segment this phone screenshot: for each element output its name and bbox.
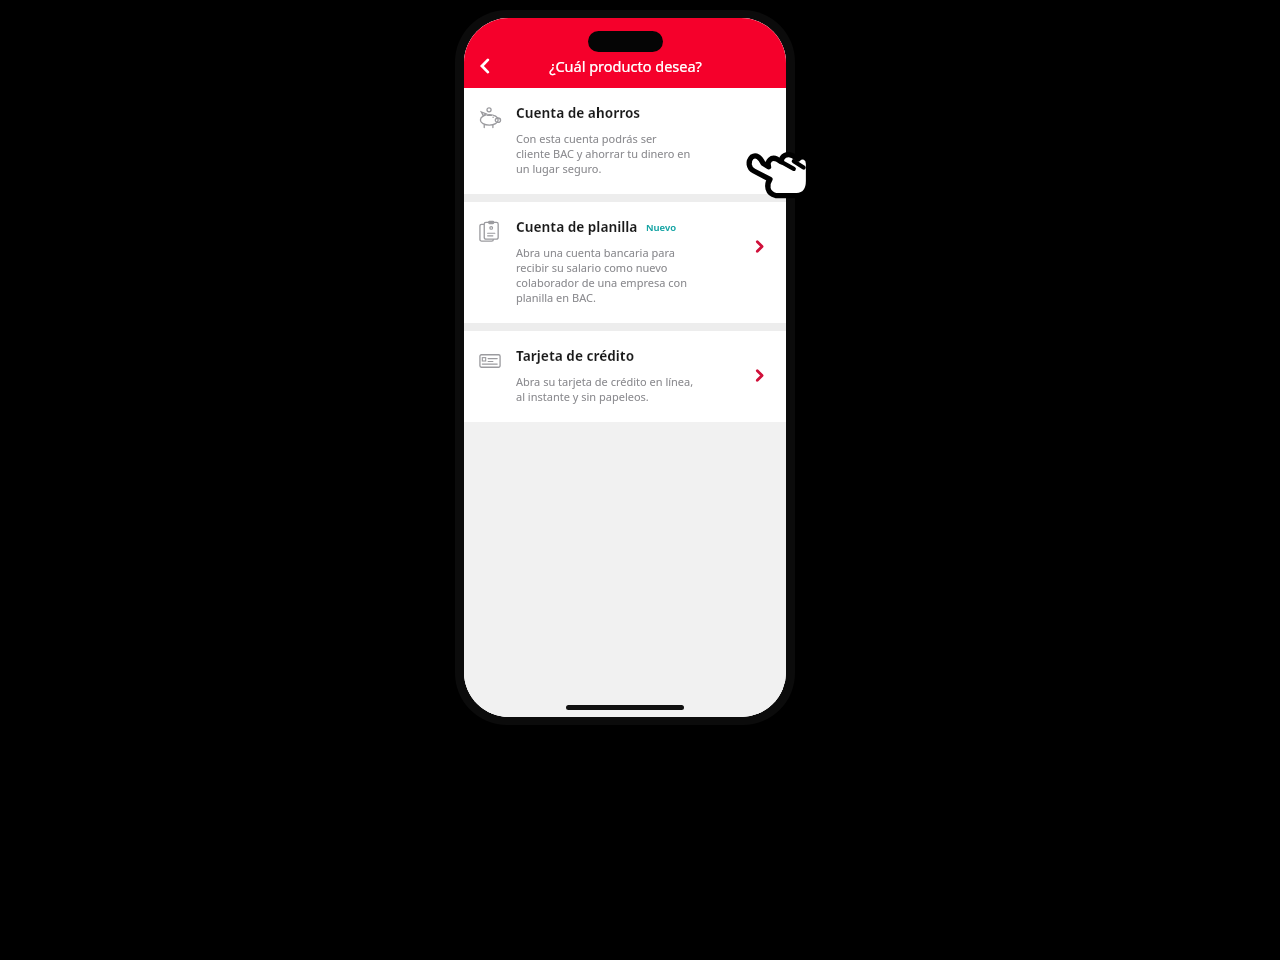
- staticText: Cuenta de ahorros: [516, 104, 641, 122]
- staticText: Abra su tarjeta de crédito en línea, al …: [516, 374, 694, 404]
- button[interactable]: Back: [464, 45, 506, 87]
- button[interactable]: Cuenta de planilla: [464, 202, 786, 323]
- staticText: Nuevo: [646, 221, 677, 234]
- staticText: Con esta cuenta podrás ser cliente BAC y…: [516, 131, 691, 176]
- button[interactable]: Cuenta de ahorros: [464, 88, 786, 194]
- staticText: Tarjeta de crédito: [516, 347, 635, 365]
- button[interactable]: Tarjeta de crédito: [464, 331, 786, 422]
- staticText: Cuenta de planilla: [516, 218, 638, 236]
- staticText: Abra una cuenta bancaria para recibir su…: [516, 245, 687, 305]
- staticText: ¿Cuál producto desea?: [549, 56, 702, 76]
- other: Tap here: [742, 136, 812, 206]
